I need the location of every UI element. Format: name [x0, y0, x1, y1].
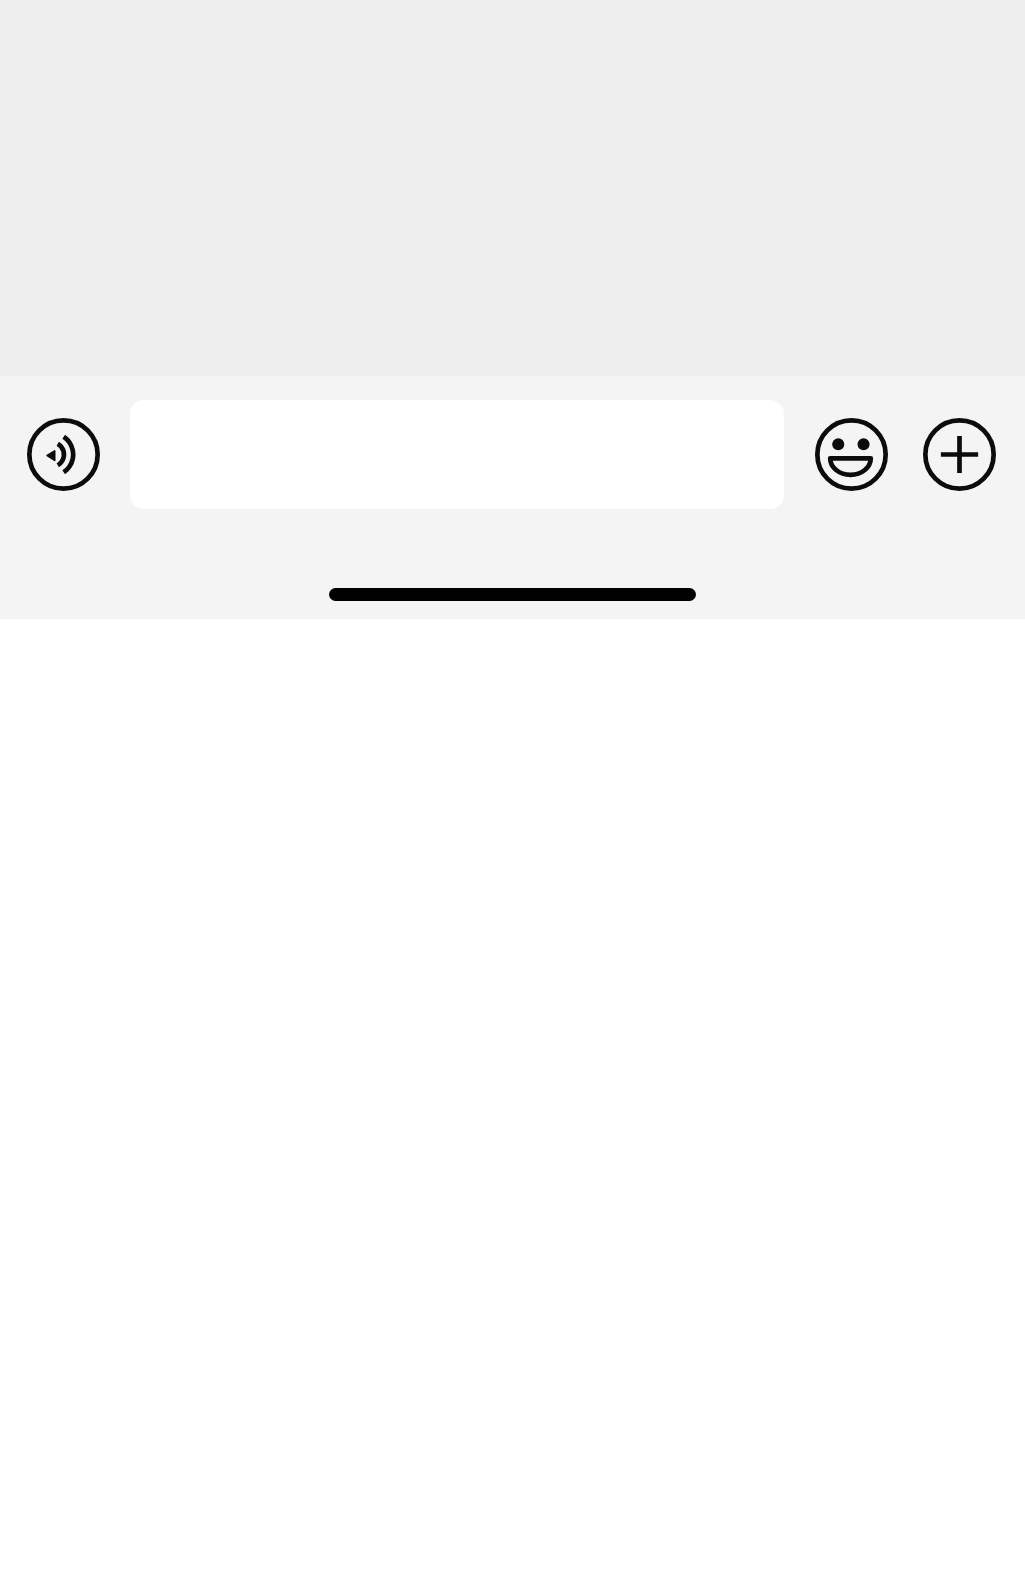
button[interactable]: Add attachment: [917, 412, 1001, 496]
button[interactable]: Emoji: [809, 412, 893, 496]
button[interactable]: Record voice message: [21, 412, 105, 496]
